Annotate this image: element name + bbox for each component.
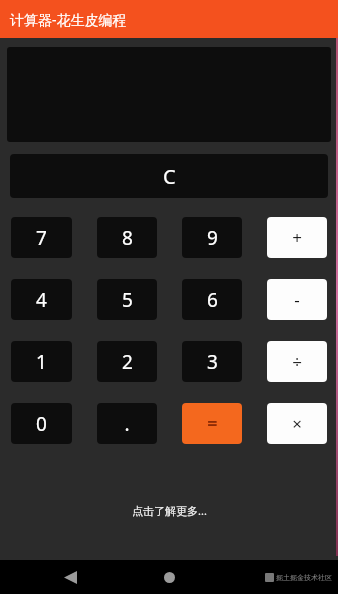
button[interactable]: Home	[154, 562, 184, 592]
button[interactable]: 8	[97, 217, 157, 258]
staticText: 5	[122, 287, 133, 313]
button[interactable]: 4	[11, 279, 72, 320]
button[interactable]: 点击了解更多...	[0, 498, 338, 522]
staticText: 6	[207, 287, 218, 313]
button[interactable]: 1	[11, 341, 72, 382]
staticText: 9	[207, 225, 218, 251]
staticText: +	[292, 226, 302, 249]
staticText: -	[294, 288, 300, 311]
button[interactable]: 3	[182, 341, 242, 382]
button[interactable]: =	[182, 403, 242, 444]
staticText: 7	[36, 225, 47, 251]
staticText: ÷	[292, 350, 302, 373]
button[interactable]: 0	[11, 403, 72, 444]
button[interactable]: 2	[97, 341, 157, 382]
button[interactable]: ÷	[267, 341, 327, 382]
button[interactable]: Back	[55, 562, 85, 592]
staticText: 计算器-花生皮编程	[10, 10, 127, 29]
button[interactable]: ×	[267, 403, 327, 444]
staticText: 4	[36, 287, 47, 313]
button[interactable]: +	[267, 217, 327, 258]
staticText: 2	[122, 349, 133, 375]
button[interactable]: 计算器-花生皮编程	[0, 0, 338, 38]
button[interactable]: 9	[182, 217, 242, 258]
button[interactable]: 6	[182, 279, 242, 320]
staticText: 3	[207, 349, 218, 375]
staticText: 掘土掘金技术社区	[276, 573, 332, 582]
button[interactable]: .	[97, 403, 157, 444]
button[interactable]: 5	[97, 279, 157, 320]
staticText: =	[207, 411, 218, 436]
staticText: 1	[36, 349, 47, 375]
button[interactable]: C	[10, 154, 328, 198]
staticText: 0	[36, 411, 47, 437]
staticText: 8	[122, 225, 133, 251]
button[interactable]: -	[267, 279, 327, 320]
staticText: .	[124, 411, 130, 437]
staticText: C	[163, 163, 176, 190]
button[interactable]: 7	[11, 217, 72, 258]
staticText: ×	[292, 412, 302, 435]
staticText: 点击了解更多...	[132, 503, 207, 518]
